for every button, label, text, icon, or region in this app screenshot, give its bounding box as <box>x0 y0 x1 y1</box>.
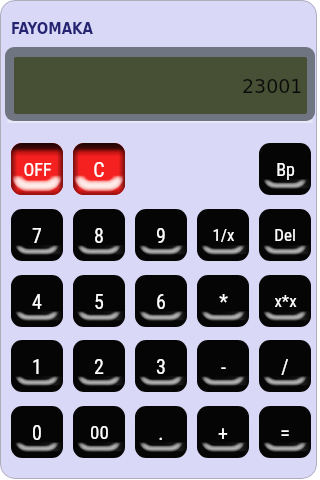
button[interactable]: = <box>259 406 311 458</box>
staticText: 8 <box>94 224 104 247</box>
button[interactable]: OFF <box>11 143 63 195</box>
staticText: 4 <box>32 290 42 313</box>
staticText: - <box>221 355 226 378</box>
staticText: 2 <box>94 355 104 378</box>
staticText: 00 <box>90 421 109 443</box>
staticText: 3 <box>156 355 166 378</box>
staticText: 9 <box>156 224 166 247</box>
staticText: . <box>158 421 164 444</box>
staticText: 1 <box>32 355 42 378</box>
staticText: = <box>280 421 290 444</box>
button[interactable]: - <box>197 340 249 392</box>
button[interactable]: 2 <box>73 340 125 392</box>
staticText: 23001 <box>242 75 303 97</box>
button[interactable]: 1/x <box>197 209 249 261</box>
button[interactable]: 1 <box>11 340 63 392</box>
staticText: / <box>281 355 289 378</box>
button[interactable]: / <box>259 340 311 392</box>
button[interactable]: 4 <box>11 275 63 327</box>
staticText: OFF <box>23 159 52 180</box>
button[interactable]: C <box>73 143 125 195</box>
button[interactable]: 6 <box>135 275 187 327</box>
staticText: 0 <box>32 421 42 444</box>
button[interactable]: 9 <box>135 209 187 261</box>
staticText: 6 <box>156 290 166 313</box>
button[interactable]: * <box>197 275 249 327</box>
staticText: 5 <box>94 290 104 313</box>
staticText: FAYOMAKA <box>11 20 93 37</box>
button[interactable]: 8 <box>73 209 125 261</box>
staticText: + <box>218 421 228 444</box>
button[interactable]: 7 <box>11 209 63 261</box>
button[interactable]: + <box>197 406 249 458</box>
staticText: Bp <box>276 159 295 180</box>
button[interactable]: 3 <box>135 340 187 392</box>
staticText: Del <box>274 225 296 245</box>
button[interactable]: 0 <box>11 406 63 458</box>
button[interactable]: 00 <box>73 406 125 458</box>
staticText: 1/x <box>212 225 235 245</box>
staticText: 7 <box>32 224 42 247</box>
button[interactable]: . <box>135 406 187 458</box>
button[interactable]: 5 <box>73 275 125 327</box>
button[interactable]: Bp <box>259 143 311 195</box>
staticText: * <box>219 290 228 313</box>
button[interactable]: x*x <box>259 275 311 327</box>
staticText: C <box>93 158 105 181</box>
button[interactable]: Del <box>259 209 311 261</box>
staticText: x*x <box>274 291 297 311</box>
